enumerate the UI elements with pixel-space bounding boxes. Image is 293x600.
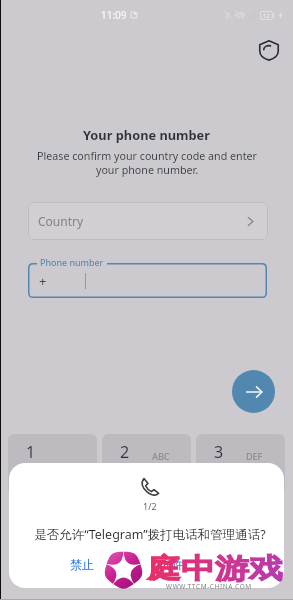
- button[interactable]: Next: [232, 370, 275, 413]
- staticText: Your phone number: [83, 126, 210, 143]
- button[interactable]: 禁止: [60, 551, 104, 578]
- staticText: Phone number: [40, 256, 104, 268]
- staticText: +: [39, 272, 47, 290]
- staticText: 11:09: [101, 8, 127, 22]
- staticText: 3: [214, 441, 224, 463]
- staticText: WWW.TTCM-CHINA.COM: [166, 582, 252, 591]
- staticText: 2: [120, 441, 130, 463]
- button[interactable]: 3: [196, 434, 285, 494]
- staticText: 12: [263, 12, 270, 19]
- staticText: 是否允许“Telegram”拨打电话和管理通话?: [34, 526, 266, 543]
- staticText: 1/2: [143, 500, 157, 512]
- staticText: DEF: [246, 450, 263, 462]
- button[interactable]: 允许: [150, 551, 194, 578]
- staticText: ABC: [152, 450, 170, 462]
- staticText: 1: [26, 441, 36, 463]
- staticText: 禁止: [70, 557, 94, 572]
- button[interactable]: 1: [8, 434, 97, 494]
- staticText: 庭中游戏: [147, 551, 283, 586]
- staticText: Please confirm your country code and ent…: [37, 149, 257, 177]
- staticText: 允许: [160, 557, 184, 572]
- button[interactable]: Proxy settings: [256, 37, 282, 63]
- staticText: Country: [38, 213, 84, 229]
- button[interactable]: 2: [102, 434, 191, 494]
- button[interactable]: Country: [28, 202, 268, 240]
